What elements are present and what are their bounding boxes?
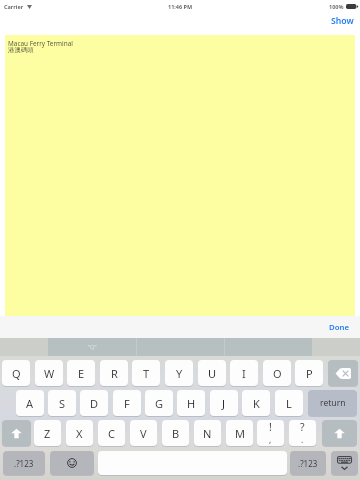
staticText: Show <box>331 15 354 27</box>
staticText: Y <box>176 366 183 381</box>
button[interactable]: F <box>113 390 141 416</box>
staticText: X <box>76 426 83 441</box>
button[interactable]: Macau Ferry Terminal 港澳碼頭 <box>5 35 355 316</box>
button[interactable]: Backspace <box>328 360 358 386</box>
button[interactable]: P <box>295 360 323 386</box>
button[interactable]: Emoji <box>50 451 94 475</box>
staticText: Carrier <box>4 3 24 10</box>
button[interactable]: ! <box>257 420 284 446</box>
button[interactable]: Hide keyboard <box>331 451 358 475</box>
staticText: I <box>242 366 246 381</box>
staticText: 11:46 PM <box>168 3 193 10</box>
staticText: ! <box>269 420 272 434</box>
staticText: “Q” <box>88 343 97 351</box>
button[interactable]: S <box>48 390 76 416</box>
staticText: E <box>78 366 85 381</box>
staticText: D <box>90 396 99 411</box>
button[interactable]: ? <box>289 420 316 446</box>
staticText: O <box>273 366 282 381</box>
button[interactable]: U <box>198 360 226 386</box>
button[interactable]: B <box>162 420 189 446</box>
staticText: T <box>143 366 150 381</box>
staticText: P <box>306 366 313 381</box>
button[interactable]: T <box>132 360 160 386</box>
button[interactable]: H <box>177 390 205 416</box>
button[interactable]: J <box>210 390 238 416</box>
button[interactable]: Done <box>320 318 360 337</box>
staticText: S <box>59 396 66 411</box>
staticText: .?123 <box>298 458 318 469</box>
button[interactable]: C <box>98 420 125 446</box>
staticText: Macau Ferry Terminal 港澳碼頭 <box>8 39 73 54</box>
staticText: B <box>172 426 180 441</box>
staticText: V <box>140 426 147 441</box>
button[interactable]: L <box>275 390 303 416</box>
staticText: H <box>187 396 196 411</box>
staticText: L <box>286 396 292 411</box>
button[interactable]: K <box>242 390 270 416</box>
button[interactable]: .?123 <box>3 451 45 475</box>
staticText: Done <box>329 322 350 333</box>
button[interactable]: G <box>145 390 173 416</box>
staticText: R <box>111 366 118 381</box>
button[interactable]: Z <box>34 420 61 446</box>
button[interactable]: W <box>35 360 63 386</box>
staticText: C <box>108 426 115 441</box>
button[interactable]: return <box>308 390 357 416</box>
staticText: W <box>44 366 55 381</box>
staticText: Z <box>44 426 51 441</box>
staticText: N <box>203 426 212 441</box>
staticText: 100% <box>329 3 344 10</box>
button[interactable]: Q <box>2 360 30 386</box>
button[interactable]: M <box>226 420 253 446</box>
button[interactable]: R <box>100 360 128 386</box>
staticText: Q <box>12 366 21 381</box>
staticText: , <box>269 434 272 446</box>
button[interactable]: A <box>16 390 44 416</box>
button[interactable]: D <box>80 390 108 416</box>
staticText: .?123 <box>14 458 34 469</box>
button[interactable]: V <box>130 420 157 446</box>
staticText: M <box>235 426 245 441</box>
staticText: U <box>208 366 217 381</box>
staticText: K <box>253 396 260 411</box>
staticText: F <box>124 396 130 411</box>
button[interactable]: Y <box>165 360 193 386</box>
button[interactable]: N <box>194 420 221 446</box>
staticText: ? <box>300 420 305 434</box>
staticText: G <box>155 396 164 411</box>
button[interactable]: .?123 <box>290 451 326 475</box>
button[interactable]: I <box>230 360 258 386</box>
button[interactable]: E <box>67 360 95 386</box>
staticText: return <box>320 397 346 409</box>
button[interactable]: X <box>66 420 93 446</box>
staticText: A <box>26 396 34 411</box>
staticText: . <box>301 434 304 446</box>
button[interactable]: Show <box>328 12 357 30</box>
button[interactable]: Shift <box>322 420 357 446</box>
button[interactable]: Shift <box>2 420 31 446</box>
staticText: J <box>222 396 226 411</box>
button[interactable]: O <box>263 360 291 386</box>
